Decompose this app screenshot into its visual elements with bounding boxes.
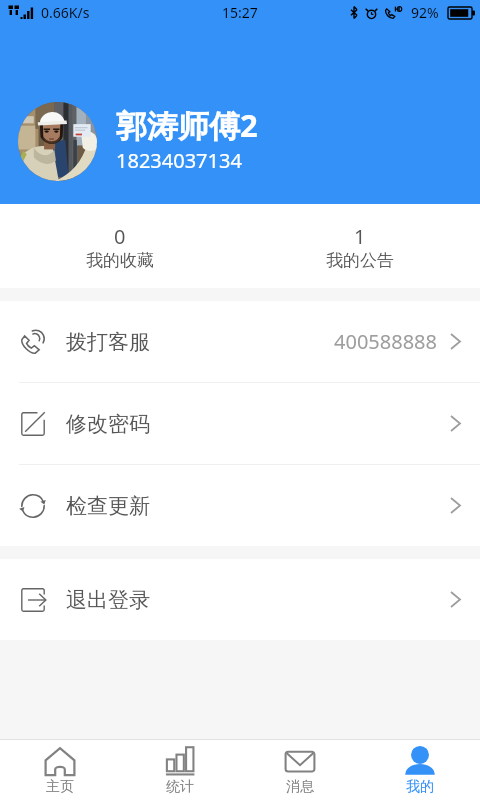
staticText: 拨打客服 <box>66 329 150 355</box>
staticText: 400588888 <box>334 328 437 355</box>
staticText: 92% <box>411 3 439 22</box>
staticText: 统计 <box>166 778 194 796</box>
button[interactable]: 1 <box>240 204 480 288</box>
button[interactable]: 消息 <box>240 740 360 800</box>
staticText: 我的公告 <box>326 250 394 271</box>
button[interactable]: Profile photo <box>18 102 97 181</box>
staticText: 0.66K/s <box>41 3 90 22</box>
staticText: 0 <box>114 223 126 250</box>
button[interactable]: 统计 <box>120 740 240 800</box>
button[interactable]: 检查更新 <box>0 465 480 546</box>
staticText: 修改密码 <box>66 411 150 437</box>
button[interactable]: 修改密码 <box>0 383 480 464</box>
staticText: 郭涛师傅2 <box>116 104 258 146</box>
staticText: 消息 <box>286 778 314 796</box>
staticText: 检查更新 <box>66 493 150 519</box>
button[interactable]: 退出登录 <box>0 559 480 640</box>
staticText: 18234037134 <box>116 147 242 174</box>
staticText: 15:27 <box>222 3 258 22</box>
staticText: 1 <box>354 223 366 250</box>
staticText: 退出登录 <box>66 587 150 613</box>
staticText: 主页 <box>46 778 74 796</box>
button[interactable]: 主页 <box>0 740 120 800</box>
button[interactable]: 拨打客服 <box>0 301 480 382</box>
button[interactable]: 0 <box>0 204 240 288</box>
staticText: 我的 <box>406 778 434 796</box>
staticText: 我的收藏 <box>86 250 154 271</box>
button[interactable]: 我的 <box>360 740 480 800</box>
